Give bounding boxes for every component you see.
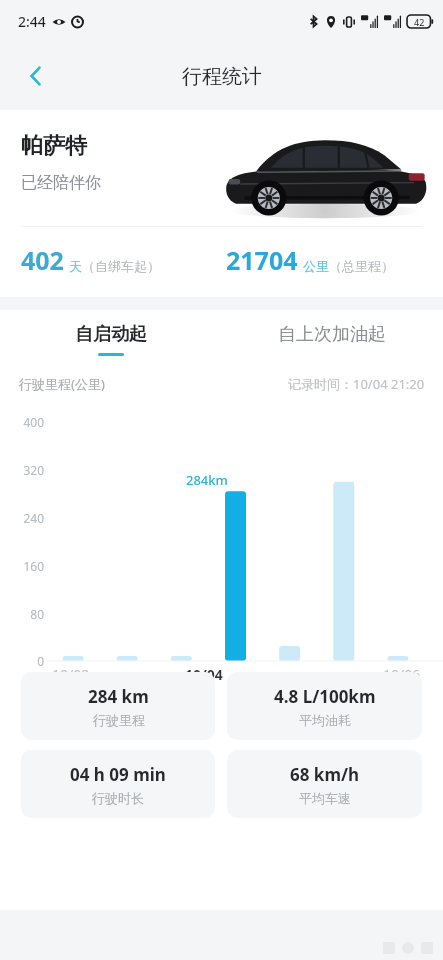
staticText: 240: [23, 510, 44, 526]
staticText: 天: [69, 258, 82, 274]
button[interactable]: 04 h 09 min: [21, 750, 215, 818]
staticText: 4.8 L/100km: [274, 685, 376, 708]
button[interactable]: 284 km: [21, 672, 215, 740]
button[interactable]: 21704: [226, 243, 394, 277]
staticText: 10/06: [383, 665, 421, 684]
staticText: 284 km: [88, 685, 149, 708]
staticText: 行驶里程: [93, 712, 145, 728]
staticText: 160: [23, 558, 44, 574]
button[interactable]: 68 km/h: [227, 750, 422, 818]
staticText: 0: [37, 653, 44, 669]
staticText: 10/03: [52, 665, 90, 684]
staticText: 04 h 09 min: [70, 763, 166, 786]
staticText: 自上次加油起: [278, 323, 386, 346]
staticText: 21704: [226, 243, 298, 277]
staticText: 402: [21, 243, 64, 277]
button[interactable]: 自启动起: [0, 310, 221, 368]
staticText: 帕萨特: [21, 132, 87, 160]
staticText: 68 km/h: [290, 763, 360, 786]
staticText: 平均油耗: [299, 712, 351, 728]
button[interactable]: 4.8 L/100km: [227, 672, 422, 740]
staticText: 行驶时长: [92, 790, 144, 806]
staticText: 80: [30, 606, 44, 622]
staticText: 284km: [186, 471, 228, 489]
button[interactable]: Back: [14, 54, 58, 98]
button[interactable]: 402: [21, 243, 226, 277]
staticText: 42: [414, 16, 425, 28]
staticText: 10/04: [185, 665, 223, 684]
staticText: 已经陪伴你: [21, 173, 101, 193]
staticText: 平均车速: [299, 790, 351, 806]
staticText: 行程统计: [182, 64, 262, 89]
button[interactable]: Home: [402, 942, 414, 954]
staticText: 行驶里程(公里): [19, 375, 105, 393]
staticText: 400: [23, 414, 44, 430]
staticText: 公里: [303, 258, 329, 274]
staticText: 记录时间：10/04 21:20: [288, 375, 425, 393]
staticText: 自启动起: [75, 323, 147, 346]
staticText: （总里程）: [329, 258, 394, 274]
staticText: 2:44: [18, 12, 46, 31]
button[interactable]: 自上次加油起: [221, 310, 443, 368]
staticText: （自绑车起）: [82, 258, 160, 274]
staticText: 320: [23, 462, 44, 478]
